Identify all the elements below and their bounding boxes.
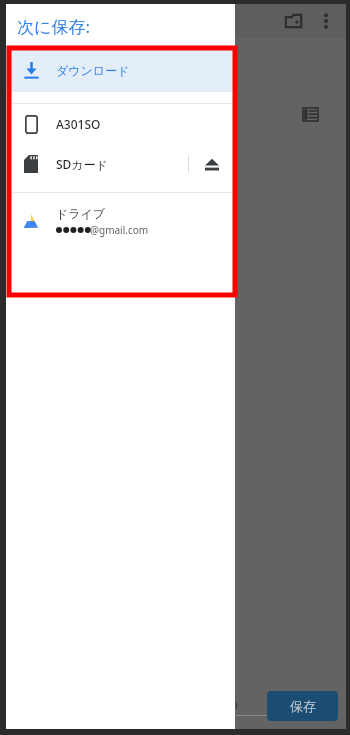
button[interactable]: 表示切替 — [295, 99, 325, 129]
button[interactable]: ドライブ — [6, 199, 235, 243]
button[interactable]: 新しいフォルダ — [276, 4, 310, 38]
button[interactable]: 保存 — [267, 691, 338, 721]
staticText: @gmail.com — [90, 223, 149, 237]
staticText: ダウンロード — [56, 63, 130, 78]
button[interactable]: その他のオプション — [310, 5, 342, 37]
staticText: p — [230, 695, 238, 713]
staticText: 次に保存: — [17, 15, 90, 38]
staticText: 保存 — [290, 698, 316, 714]
button[interactable]: ダウンロード — [6, 48, 235, 92]
button[interactable]: SDカード — [6, 144, 235, 184]
staticText: A301SO — [56, 116, 101, 132]
staticText: ドライブ — [56, 206, 106, 221]
button[interactable]: 取り出し — [198, 150, 226, 178]
button[interactable]: A301SO — [6, 104, 235, 144]
staticText: SDカード — [56, 156, 108, 172]
